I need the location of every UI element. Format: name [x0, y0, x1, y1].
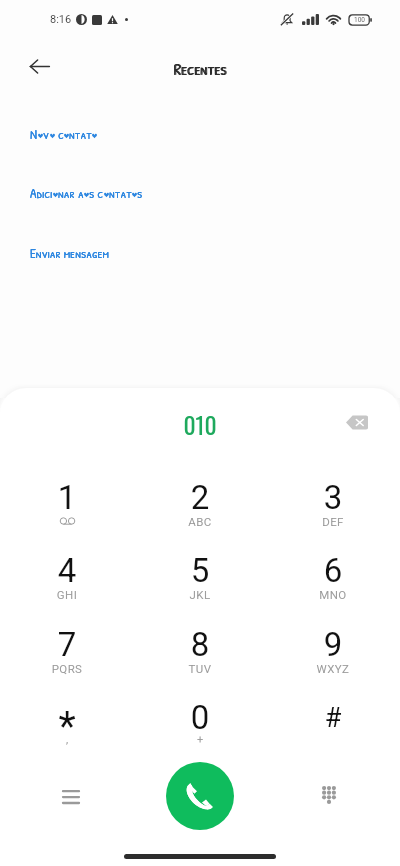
staticText: s: [137, 184, 143, 202]
button[interactable]: 6: [288, 544, 378, 614]
staticText: 4: [22, 551, 112, 590]
staticText: ntat: [69, 125, 92, 143]
button[interactable]: Back: [22, 49, 56, 83]
staticText: v: [43, 125, 50, 143]
button[interactable]: 3: [288, 471, 378, 541]
button[interactable]: N: [0, 123, 400, 145]
staticText: GHI: [22, 588, 112, 601]
button[interactable]: 9: [288, 618, 378, 688]
staticText: 010: [0, 407, 400, 442]
button[interactable]: 4: [22, 544, 112, 614]
staticText: 100: [354, 16, 365, 24]
staticText: s: [137, 184, 143, 202]
staticText: Recentes: [1, 58, 400, 80]
staticText: N: [30, 125, 38, 143]
staticText: 9: [288, 625, 378, 664]
button[interactable]: 8: [155, 618, 245, 688]
staticText: *: [22, 703, 112, 750]
staticText: 8: [155, 625, 245, 664]
button[interactable]: Call log: [49, 787, 93, 805]
staticText: 2: [155, 478, 245, 517]
staticText: s c: [89, 184, 104, 202]
button[interactable]: Adici: [0, 182, 400, 204]
staticText: Adici: [30, 184, 53, 202]
staticText: Recentes: [0, 58, 400, 80]
staticText: 1: [22, 478, 112, 517]
button[interactable]: 7: [22, 618, 112, 688]
staticText: ABC: [155, 515, 245, 528]
button[interactable]: 5: [155, 544, 245, 614]
staticText: 8:16: [50, 13, 72, 26]
staticText: WXYZ: [288, 662, 378, 675]
staticText: DEF: [288, 515, 378, 528]
staticText: ntat: [109, 184, 132, 202]
button[interactable]: 0: [155, 691, 245, 761]
staticText: 0: [155, 698, 245, 737]
staticText: c: [55, 125, 64, 143]
button[interactable]: 1: [22, 471, 112, 541]
staticText: 3: [288, 478, 378, 517]
staticText: Recentes: [0, 58, 400, 80]
staticText: PQRS: [22, 662, 112, 675]
button[interactable]: 2: [155, 471, 245, 541]
button[interactable]: *: [22, 691, 112, 761]
button[interactable]: #: [288, 691, 378, 761]
staticText: ,: [22, 733, 112, 746]
staticText: MNO: [288, 588, 378, 601]
staticText: +: [155, 733, 245, 746]
staticText: c: [55, 125, 64, 143]
staticText: N: [30, 125, 38, 143]
staticText: 5: [155, 551, 245, 590]
staticText: v: [43, 125, 50, 143]
staticText: s c: [89, 184, 104, 202]
button[interactable]: Call: [166, 762, 234, 830]
staticText: ntat: [69, 125, 92, 143]
staticText: Enviar mensagem: [30, 244, 109, 262]
staticText: #: [288, 702, 378, 734]
button[interactable]: Backspace: [337, 402, 377, 442]
staticText: 6: [288, 551, 378, 590]
staticText: Enviar mensagem: [30, 244, 109, 262]
staticText: JKL: [155, 588, 245, 601]
staticText: nar a: [58, 184, 84, 202]
staticText: nar a: [58, 184, 84, 202]
staticText: 7: [22, 625, 112, 664]
staticText: ntat: [109, 184, 132, 202]
button[interactable]: Dialpad: [307, 784, 351, 806]
button[interactable]: Enviar mensagem: [0, 242, 400, 264]
staticText: Adici: [30, 184, 53, 202]
staticText: TUV: [155, 662, 245, 675]
